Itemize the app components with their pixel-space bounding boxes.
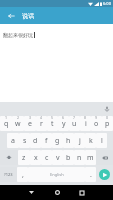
staticText: m xyxy=(87,153,94,163)
staticText: 5 xyxy=(51,116,54,120)
staticText: y xyxy=(62,119,66,129)
staticText: 7 xyxy=(73,116,76,120)
button[interactable]: d xyxy=(30,133,41,148)
button[interactable]: Back xyxy=(0,7,22,24)
staticText: h xyxy=(66,136,71,146)
staticText: 4 xyxy=(40,116,43,120)
staticText: z xyxy=(22,153,26,163)
button[interactable]: e xyxy=(24,116,36,131)
staticText: 翻起来很好玩 xyxy=(3,32,33,38)
staticText: t xyxy=(51,119,54,129)
button[interactable]: i xyxy=(80,116,91,131)
button[interactable]: z xyxy=(18,150,30,165)
staticText: x xyxy=(34,153,38,163)
button[interactable]: t xyxy=(47,116,58,131)
button[interactable]: b xyxy=(63,150,74,165)
button[interactable]: Shift xyxy=(0,150,18,165)
button[interactable]: l xyxy=(96,133,107,148)
staticText: s xyxy=(23,136,27,146)
staticText: 1 xyxy=(5,116,8,120)
staticText: u xyxy=(72,119,77,129)
staticText: ?123 xyxy=(4,172,13,177)
staticText: j xyxy=(79,136,81,146)
button[interactable]: Send xyxy=(96,166,113,183)
staticText: r xyxy=(40,119,43,129)
staticText: l xyxy=(101,136,103,146)
staticText: i xyxy=(85,119,87,129)
staticText: o xyxy=(94,119,99,129)
button[interactable]: Backspace xyxy=(96,150,113,165)
button[interactable]: c xyxy=(41,150,52,165)
staticText: 3 xyxy=(29,116,32,120)
button[interactable]: q xyxy=(0,116,12,131)
staticText: 说话 xyxy=(22,12,34,20)
staticText: , xyxy=(22,170,24,180)
button[interactable]: Back xyxy=(23,185,39,200)
button[interactable]: o xyxy=(91,116,102,131)
button[interactable]: Home xyxy=(49,185,65,200)
staticText: f xyxy=(45,136,48,146)
button[interactable]: m xyxy=(85,150,96,165)
staticText: 8 xyxy=(84,116,87,120)
button[interactable]: Recents xyxy=(74,185,90,200)
staticText: . xyxy=(90,170,92,180)
staticText: g xyxy=(55,136,60,146)
staticText: d xyxy=(33,136,38,146)
button[interactable]: n xyxy=(74,150,85,165)
button[interactable]: g xyxy=(52,133,63,148)
staticText: 6 xyxy=(62,116,65,120)
staticText: b xyxy=(66,153,71,163)
staticText: n xyxy=(77,153,82,163)
button[interactable]: ?123 xyxy=(0,167,17,182)
button[interactable]: f xyxy=(41,133,52,148)
button[interactable]: h xyxy=(63,133,74,148)
staticText: p xyxy=(105,119,110,129)
staticText: q xyxy=(4,119,9,129)
staticText: v xyxy=(56,153,60,163)
staticText: e xyxy=(28,119,32,129)
staticText: w xyxy=(15,119,21,129)
button[interactable]: k xyxy=(85,133,96,148)
button[interactable]: , xyxy=(17,167,28,182)
staticText: 6:00 xyxy=(103,1,111,6)
button[interactable]: v xyxy=(52,150,63,165)
staticText: 0 xyxy=(106,116,109,120)
button[interactable]: Voice input xyxy=(102,104,111,113)
button[interactable]: w xyxy=(12,116,24,131)
staticText: c xyxy=(45,153,49,163)
button[interactable]: x xyxy=(30,150,41,165)
button[interactable]: English xyxy=(28,167,85,182)
staticText: English xyxy=(50,172,64,177)
button[interactable]: s xyxy=(19,133,30,148)
button[interactable]: a xyxy=(7,133,19,148)
staticText: 9 xyxy=(95,116,98,120)
button[interactable]: j xyxy=(74,133,85,148)
button[interactable]: y xyxy=(58,116,69,131)
staticText: k xyxy=(89,136,93,146)
button[interactable]: . xyxy=(85,167,96,182)
button[interactable]: u xyxy=(69,116,80,131)
button[interactable]: r xyxy=(36,116,47,131)
staticText: 2 xyxy=(17,116,20,120)
button[interactable]: p xyxy=(102,116,113,131)
staticText: a xyxy=(11,136,15,146)
